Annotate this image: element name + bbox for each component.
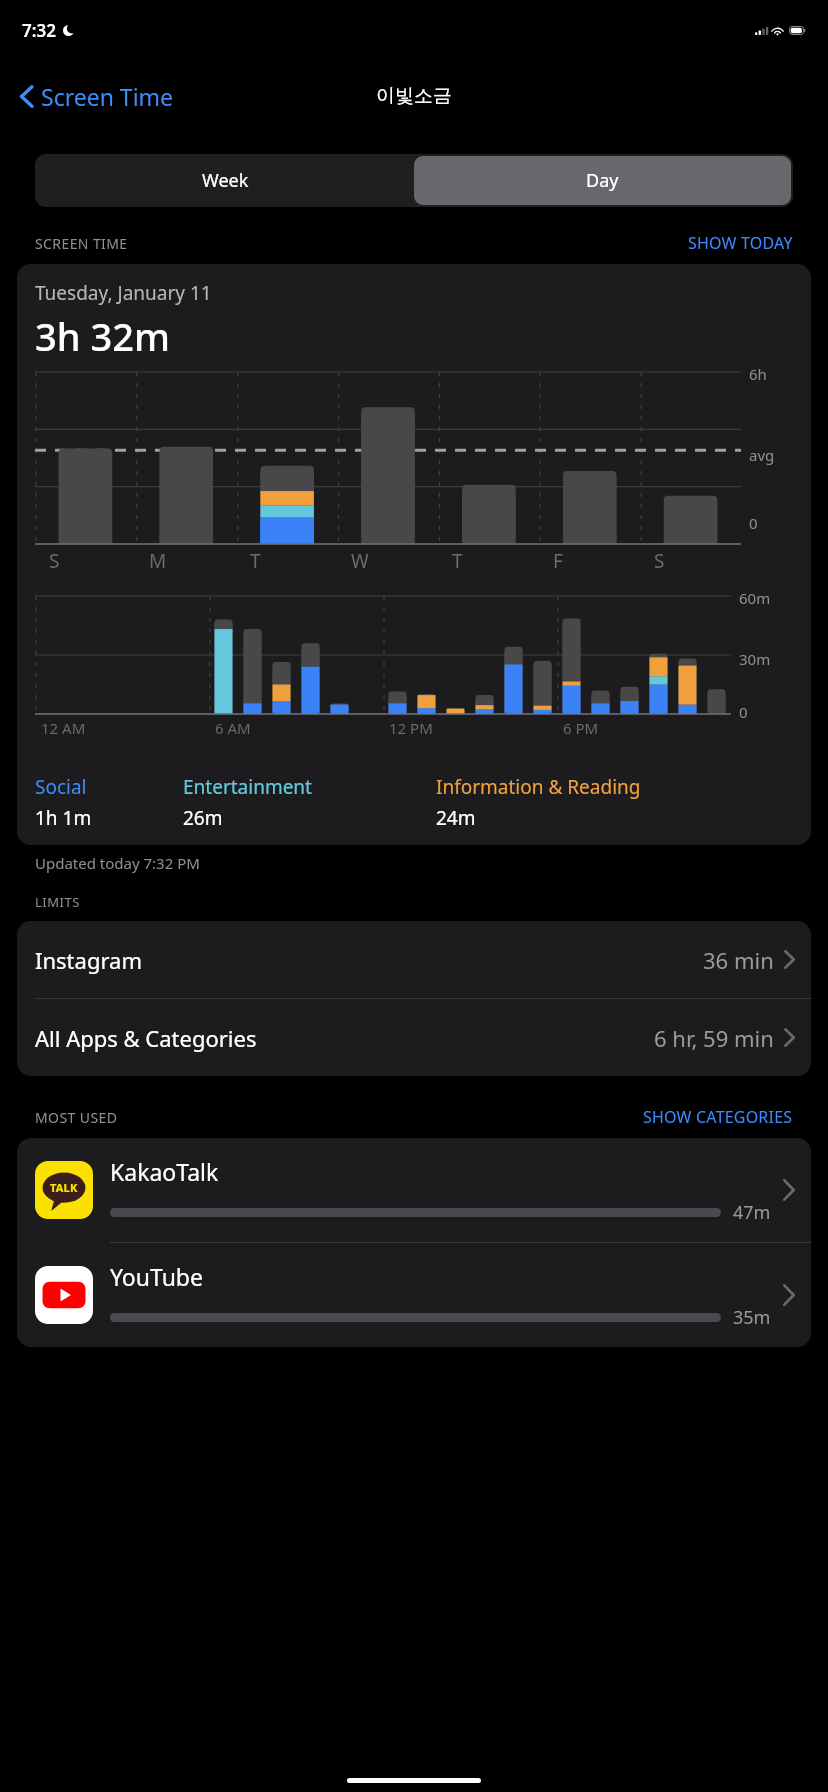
staticText: 30m — [739, 649, 771, 669]
staticText: 12 PM — [389, 718, 433, 738]
staticText: W — [351, 548, 369, 574]
staticText: All Apps & Categories — [35, 1023, 654, 1053]
staticText: 26m — [183, 805, 223, 831]
staticText: 3h 32m — [35, 310, 170, 362]
button[interactable]: All Apps & Categories — [17, 999, 811, 1076]
staticText: Tuesday, January 11 — [35, 280, 212, 306]
staticText: 47m — [733, 1200, 771, 1225]
staticText: T — [250, 548, 261, 574]
staticText: Instagram — [35, 945, 703, 975]
staticText: 6h — [749, 364, 767, 384]
staticText: 1h 1m — [35, 805, 92, 831]
staticText: 24m — [436, 805, 476, 831]
staticText: 12 AM — [41, 718, 86, 738]
staticText: LIMITS — [35, 893, 80, 911]
staticText: 36 min — [703, 945, 774, 975]
staticText: F — [553, 548, 563, 574]
staticText: Day — [586, 168, 619, 193]
staticText: SCREEN TIME — [35, 234, 128, 253]
staticText: 0 — [739, 702, 748, 722]
staticText: 6 AM — [215, 718, 251, 738]
button[interactable]: YouTube — [17, 1243, 811, 1347]
staticText: 이빛소금 — [376, 84, 452, 108]
button[interactable]: Tuesday, January 11 — [17, 264, 811, 845]
staticText: 6 PM — [563, 718, 599, 738]
staticText: Week — [202, 168, 249, 193]
staticText: MOST USED — [35, 1108, 118, 1127]
button[interactable]: Day — [414, 156, 791, 205]
staticText: 7:32 — [22, 19, 56, 42]
button[interactable]: SHOW CATEGORIES — [643, 1106, 793, 1128]
staticText: 0 — [749, 513, 758, 533]
staticText: YouTube — [110, 1261, 203, 1292]
staticText: Screen Time — [41, 81, 174, 112]
staticText: 6 hr, 59 min — [654, 1023, 774, 1053]
staticText: Entertainment — [183, 774, 312, 800]
staticText: M — [149, 548, 167, 574]
staticText: Updated today 7:32 PM — [35, 853, 200, 873]
staticText: S — [49, 548, 60, 574]
staticText: avg — [749, 445, 775, 465]
staticText: SHOW TODAY — [688, 232, 793, 254]
staticText: TALK — [50, 1180, 78, 1195]
button[interactable]: Instagram — [17, 921, 811, 999]
staticText: T — [452, 548, 463, 574]
button[interactable]: TALK — [17, 1138, 811, 1243]
button[interactable]: Week — [37, 156, 414, 205]
staticText: 35m — [733, 1305, 771, 1330]
staticText: Information & Reading — [436, 774, 641, 800]
button[interactable]: Screen Time — [0, 73, 184, 120]
staticText: KakaoTalk — [110, 1156, 219, 1187]
staticText: Social — [35, 774, 87, 800]
button[interactable]: SHOW TODAY — [688, 232, 793, 254]
staticText: S — [654, 548, 665, 574]
staticText: 60m — [739, 588, 771, 608]
staticText: SHOW CATEGORIES — [643, 1106, 793, 1128]
